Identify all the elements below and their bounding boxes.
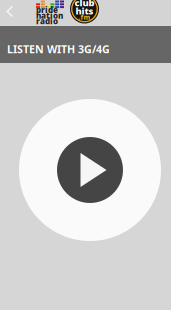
staticText: LISTEN WITH 3G/4G <box>7 42 110 56</box>
staticText: radio <box>36 16 58 26</box>
staticText: nation <box>36 10 63 21</box>
staticText: .fm <box>78 13 90 22</box>
button[interactable]: Back <box>0 0 20 24</box>
staticText: hits <box>75 5 93 17</box>
staticText: pride <box>36 5 58 15</box>
button[interactable]: Play <box>19 99 161 241</box>
staticText: club <box>74 0 94 9</box>
